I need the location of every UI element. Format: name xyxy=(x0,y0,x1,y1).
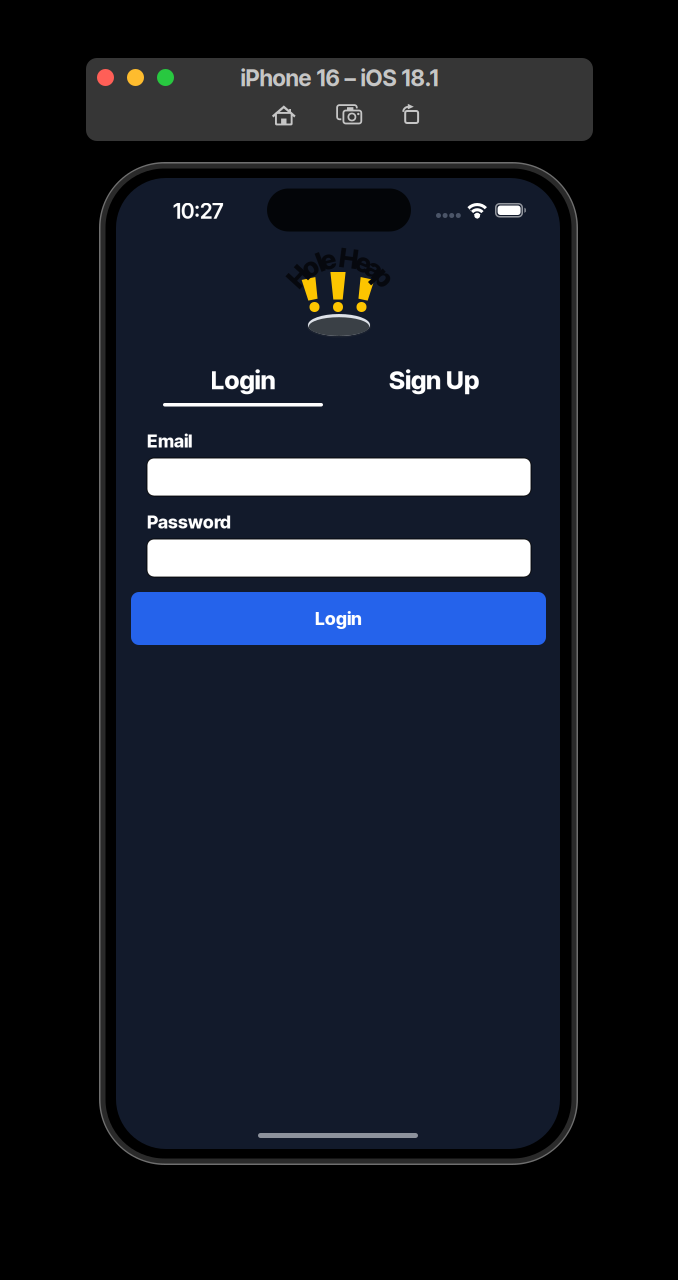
staticText: Login xyxy=(210,365,275,395)
staticText: H xyxy=(289,261,308,293)
staticText xyxy=(336,242,341,274)
staticText: 10:27 xyxy=(173,198,224,224)
button[interactable]: Home xyxy=(272,105,296,126)
button[interactable]: Login xyxy=(131,592,546,645)
staticText: Password xyxy=(147,511,231,533)
button[interactable]: Sign Up xyxy=(330,363,537,421)
staticText: H xyxy=(339,242,358,275)
staticText: a xyxy=(367,253,382,285)
button[interactable]: Login xyxy=(139,363,346,421)
staticText: e xyxy=(356,246,371,279)
staticText: e xyxy=(320,243,335,276)
staticText: Sign Up xyxy=(389,365,479,395)
staticText: p xyxy=(376,261,392,293)
staticText: l xyxy=(317,246,324,278)
button[interactable]: Rotate xyxy=(399,105,420,126)
staticText: o xyxy=(302,251,318,283)
staticText: iPhone 16 – iOS 18.1 xyxy=(240,64,438,92)
staticText: Login xyxy=(315,608,362,629)
staticText: Email xyxy=(147,430,192,452)
button[interactable]: Screenshot xyxy=(336,104,363,125)
